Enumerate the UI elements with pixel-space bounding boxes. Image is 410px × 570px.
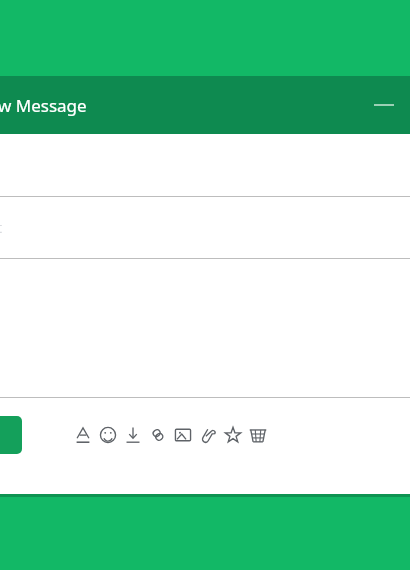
staticText: t <box>0 218 3 237</box>
button[interactable]: Send <box>0 416 22 454</box>
button[interactable]: Discard draft <box>245 416 270 454</box>
button[interactable]: Minimize <box>362 83 406 127</box>
button[interactable]: w Message <box>0 76 410 134</box>
button[interactable]: Insert signature <box>220 416 245 454</box>
button[interactable]: Insert photo <box>170 416 195 454</box>
button[interactable]: Insert link <box>145 416 170 454</box>
button[interactable]: Insert emoji <box>95 416 120 454</box>
button[interactable]: Insert from Drive <box>120 416 145 454</box>
button[interactable]: Formatting options <box>70 416 95 454</box>
staticText: w Message <box>0 94 87 117</box>
button[interactable]: Attach files <box>195 416 220 454</box>
